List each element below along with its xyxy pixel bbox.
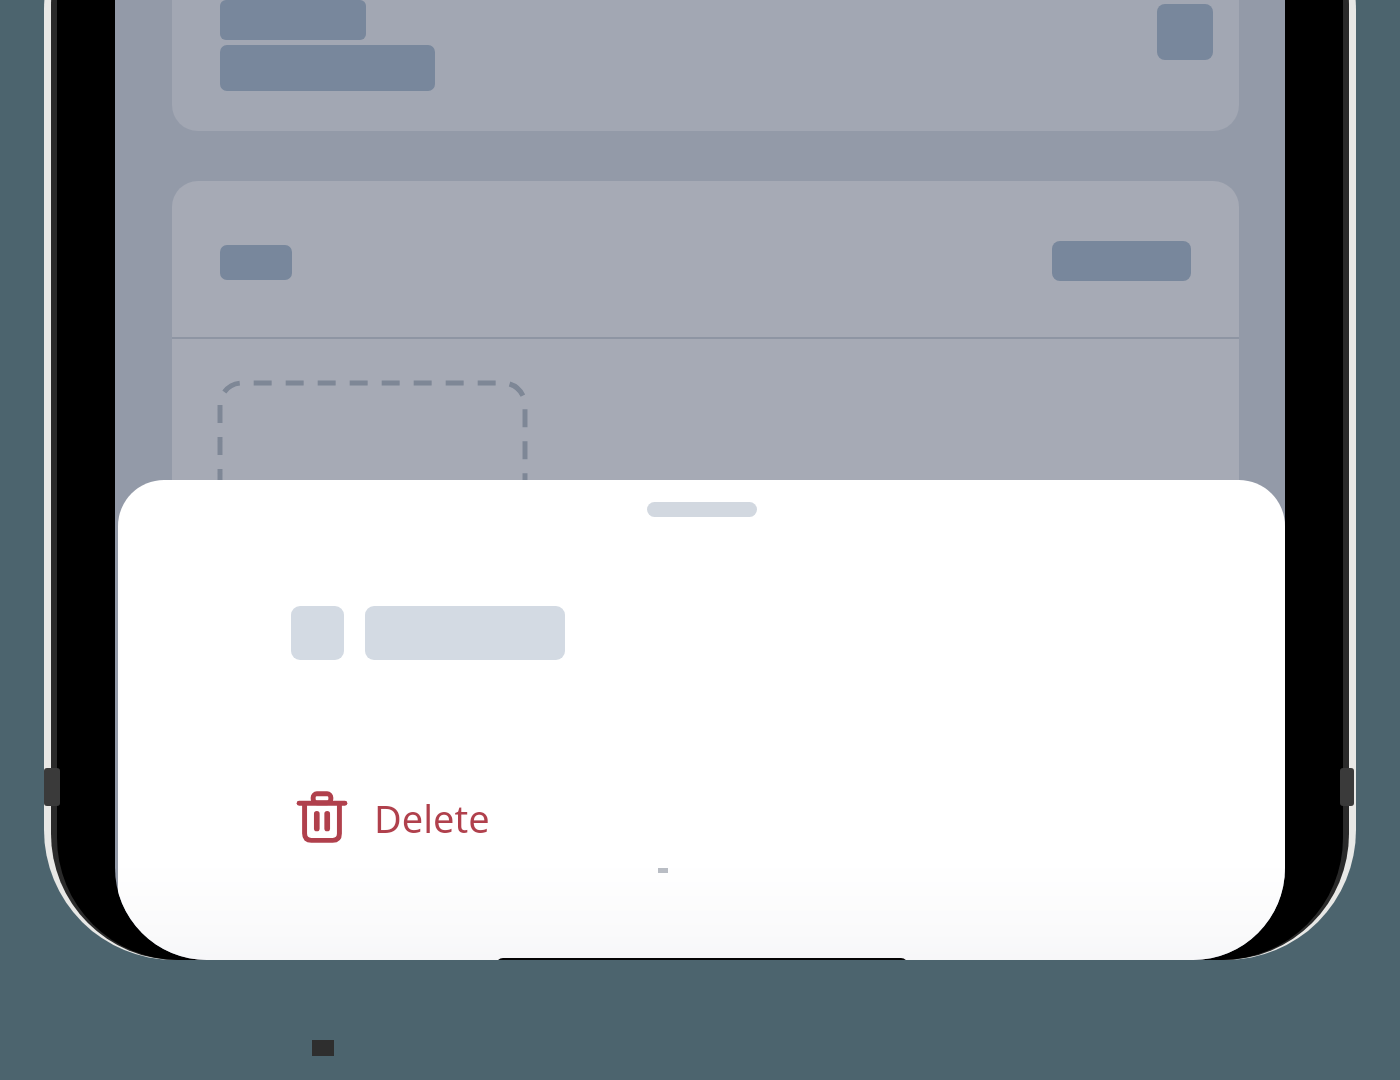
staticText: Delete xyxy=(374,792,490,844)
button[interactable]: Delete xyxy=(268,775,558,861)
other: Drag handle xyxy=(647,502,757,517)
